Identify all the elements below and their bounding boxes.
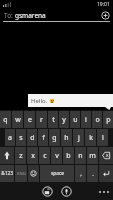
staticText: r (40, 115, 43, 125)
staticText: q (3, 115, 8, 125)
staticText: t (52, 115, 55, 125)
staticText: b (66, 151, 71, 161)
staticText: u (73, 115, 78, 125)
button[interactable]: . (87, 165, 98, 182)
button[interactable]: , (75, 165, 86, 182)
staticText: a (8, 133, 12, 143)
button[interactable]: u (70, 111, 80, 128)
staticText: 19:01 (97, 1, 110, 8)
button[interactable]: o (92, 111, 102, 128)
staticText: p (106, 115, 111, 125)
button[interactable]: c (39, 147, 50, 164)
staticText: ENG (17, 171, 26, 177)
staticText: To: (4, 11, 13, 20)
staticText: space (51, 170, 64, 177)
button[interactable]: r (36, 111, 47, 128)
button[interactable]: Hello. (28, 94, 113, 107)
button[interactable]: space (40, 165, 74, 182)
button[interactable]: Emoji (28, 165, 39, 182)
button[interactable]: a (5, 129, 15, 146)
staticText: f (42, 133, 45, 143)
staticText: l (102, 133, 104, 143)
staticText: w (15, 115, 21, 125)
staticText: s (19, 133, 23, 143)
button[interactable]: g (49, 129, 60, 146)
button[interactable]: More options (99, 191, 109, 193)
staticText: j (78, 133, 80, 143)
staticText: m (89, 151, 96, 161)
button[interactable]: q (0, 111, 11, 128)
staticText: d (30, 133, 35, 143)
staticText: o (95, 115, 100, 125)
staticText: . (92, 170, 94, 178)
button[interactable]: b (63, 147, 74, 164)
staticText: k (89, 133, 93, 143)
button[interactable]: z (15, 147, 26, 164)
button[interactable]: x (27, 147, 38, 164)
button[interactable]: Enter (99, 165, 113, 182)
button[interactable]: Backspace (99, 147, 113, 164)
button[interactable]: s (16, 129, 26, 146)
staticText: &123 (1, 170, 13, 177)
button[interactable]: t (48, 111, 58, 128)
button[interactable]: e (24, 111, 35, 128)
staticText: gsmarena (15, 11, 46, 20)
button[interactable]: Voice message (61, 186, 72, 197)
button[interactable]: h (61, 129, 72, 146)
staticText: c (43, 151, 47, 161)
button[interactable]: l (97, 129, 108, 146)
button[interactable]: &123 (0, 165, 14, 182)
button[interactable]: Add recipient (101, 11, 110, 20)
button[interactable]: i (81, 111, 91, 128)
button[interactable]: j (73, 129, 84, 146)
button[interactable]: f (38, 129, 48, 146)
button[interactable]: p (103, 111, 113, 128)
staticText: y (62, 115, 66, 125)
staticText: e (28, 115, 32, 125)
button[interactable]: To: (0, 9, 113, 22)
button[interactable]: m (87, 147, 98, 164)
staticText: i (85, 115, 87, 125)
staticText: Hello. (31, 97, 48, 105)
button[interactable]: y (59, 111, 69, 128)
button[interactable]: v (51, 147, 62, 164)
button[interactable]: Attach (42, 186, 53, 197)
button[interactable]: ENG (15, 165, 27, 182)
staticText: h (64, 133, 69, 143)
staticText: x (31, 151, 35, 161)
staticText: v (55, 151, 59, 161)
button[interactable]: n (75, 147, 86, 164)
button[interactable]: w (12, 111, 23, 128)
staticText: g (52, 133, 57, 143)
button[interactable]: k (85, 129, 96, 146)
staticText: n (78, 151, 83, 161)
button[interactable]: d (27, 129, 37, 146)
button[interactable]: Shift (0, 147, 14, 164)
staticText: , (80, 170, 82, 178)
staticText: z (19, 151, 23, 161)
